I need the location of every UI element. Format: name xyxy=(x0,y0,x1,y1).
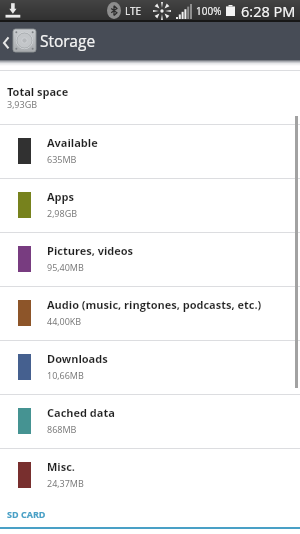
staticText: Available xyxy=(47,135,98,150)
staticText: 635MB xyxy=(47,153,77,165)
staticText: 6:28 PM xyxy=(241,2,296,22)
staticText: Pictures, videos xyxy=(47,243,134,258)
staticText: Cached data xyxy=(47,405,115,420)
staticText: 44,00KB xyxy=(47,315,82,327)
staticText: Storage xyxy=(40,30,96,51)
staticText: Apps xyxy=(47,189,74,204)
staticText: 868MB xyxy=(47,423,77,435)
button[interactable]: Cached data xyxy=(0,394,300,448)
staticText: Downloads xyxy=(47,351,108,366)
staticText: 10,66MB xyxy=(47,369,84,381)
staticText: LTE xyxy=(125,4,142,18)
button[interactable]: Pictures, videos xyxy=(0,232,300,286)
staticText: Audio (music, ringtones, podcasts, etc.) xyxy=(47,297,262,312)
button[interactable]: Downloads xyxy=(0,340,300,394)
staticText: 2,98GB xyxy=(47,207,78,219)
staticText: 95,40MB xyxy=(47,261,84,273)
staticText: Total space xyxy=(7,84,69,99)
button[interactable]: Back xyxy=(0,22,13,60)
staticText: 100% xyxy=(196,4,222,18)
button[interactable]: Audio (music, ringtones, podcasts, etc.) xyxy=(0,286,300,340)
staticText: 24,37MB xyxy=(47,477,84,489)
staticText: 3,93GB xyxy=(7,98,38,110)
staticText: SD CARD xyxy=(7,508,46,520)
button[interactable]: SD CARD xyxy=(0,500,300,534)
button[interactable]: Apps xyxy=(0,178,300,232)
staticText: Misc. xyxy=(47,459,75,474)
button[interactable]: Misc. xyxy=(0,448,300,502)
button[interactable]: Available xyxy=(0,124,300,178)
